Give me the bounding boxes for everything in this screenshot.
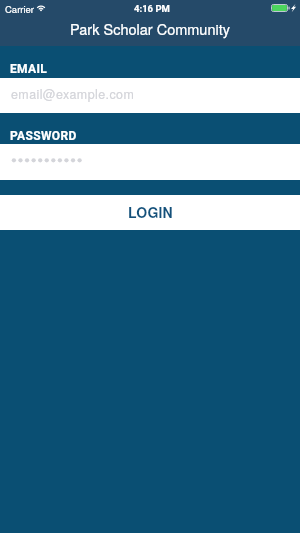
staticText: PASSWORD	[10, 129, 77, 143]
button[interactable]: LOGIN	[0, 195, 300, 230]
staticText: Carrier	[5, 2, 35, 16]
staticText: LOGIN	[128, 202, 173, 222]
staticText: email@example.com	[11, 85, 135, 103]
staticText: 4:16 PM	[134, 3, 170, 14]
other: Wi-Fi	[36, 4, 46, 11]
other: Battery charging	[271, 4, 296, 12]
staticText: EMAIL	[10, 62, 48, 76]
staticText: Park Scholar Community	[70, 18, 230, 39]
button[interactable]: email@example.com	[0, 78, 300, 113]
button[interactable]: Password	[0, 144, 300, 180]
